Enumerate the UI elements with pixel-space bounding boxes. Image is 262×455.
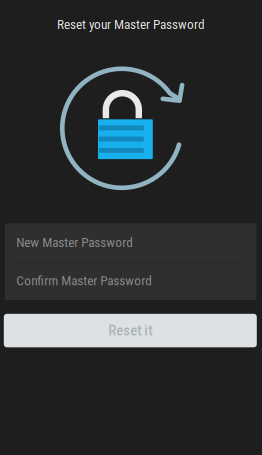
staticText: Reset it (108, 322, 152, 339)
staticText: Reset your Master Password (57, 17, 205, 32)
staticText: New Master Password (16, 235, 133, 250)
button[interactable]: New Master Password (5, 223, 256, 261)
button[interactable]: Reset it (4, 314, 257, 347)
button[interactable]: Confirm Master Password (5, 261, 256, 300)
staticText: Confirm Master Password (16, 273, 152, 288)
